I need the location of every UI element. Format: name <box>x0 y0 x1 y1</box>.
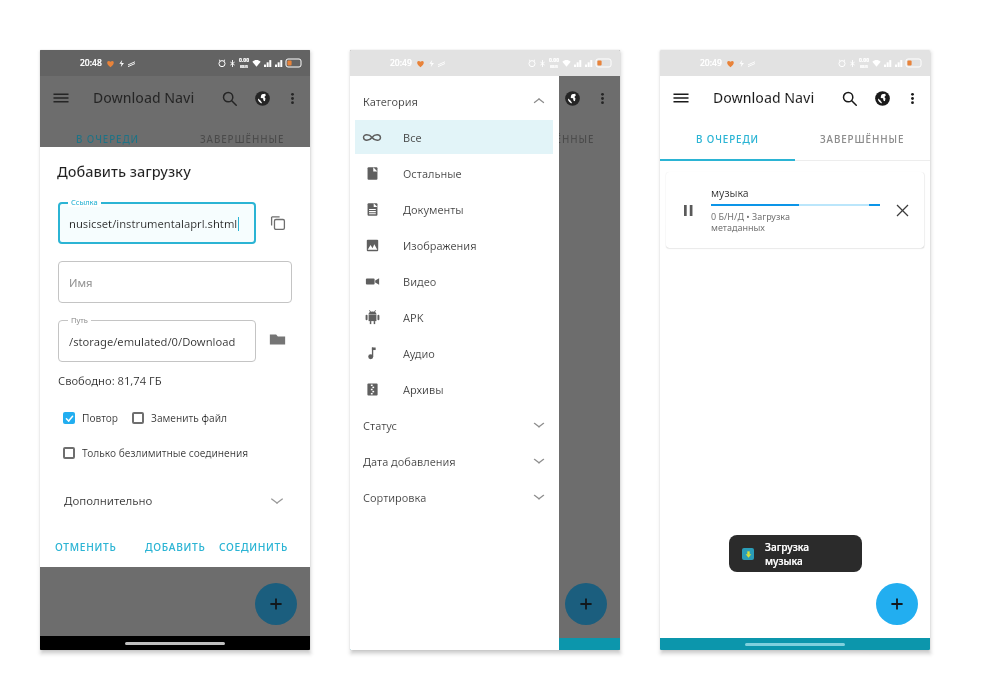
staticText: Download Navi <box>713 88 815 107</box>
staticText: 0.00 <box>859 57 869 64</box>
staticText: В ОЧЕРЕДИ <box>386 133 449 146</box>
staticText: Сортировка <box>363 490 427 505</box>
button[interactable]: Загрузка музыка <box>729 535 862 572</box>
button[interactable]: Choose folder <box>266 328 288 350</box>
staticText: Все <box>403 130 422 145</box>
staticText: Имя <box>69 275 93 290</box>
button[interactable]: Add download <box>876 583 918 625</box>
staticText: ДОБАВИТЬ <box>145 540 206 554</box>
button[interactable]: Add download <box>565 583 607 625</box>
button[interactable]: Copy link <box>267 212 289 234</box>
button[interactable]: Сортировка <box>350 479 559 515</box>
button[interactable]: ОТМЕНИТЬ <box>55 540 117 554</box>
button[interactable]: Остальные <box>355 156 553 190</box>
staticText: Видео <box>403 274 437 289</box>
staticText: ЗАВЕРШЁННЫЕ <box>200 133 285 146</box>
staticText: KB/S <box>860 64 869 69</box>
button[interactable]: Категория <box>350 83 559 119</box>
staticText: Download Navi <box>403 88 505 107</box>
staticText: 0.00 <box>549 57 559 64</box>
staticText: 20:49 <box>390 57 412 69</box>
staticText: В ОЧЕРЕДИ <box>76 133 139 146</box>
button[interactable]: ЗАВЕРШЁННЫЕ <box>485 119 620 159</box>
button[interactable]: Дата добавления <box>350 443 559 479</box>
button[interactable]: Search <box>838 87 860 109</box>
staticText: Путь <box>71 315 88 325</box>
staticText: 20:49 <box>700 57 722 69</box>
staticText: Повтор <box>82 411 119 425</box>
button[interactable]: APK <box>355 300 553 334</box>
button[interactable]: Только безлимитные соединения <box>62 446 249 460</box>
staticText: Категория <box>363 94 418 109</box>
button[interactable]: Аудио <box>355 336 553 370</box>
button[interactable]: Open navigation drawer <box>669 86 693 110</box>
button[interactable]: Видео <box>355 264 553 298</box>
staticText: 0 Б/Н/Д • Загрузка метаданных <box>711 210 790 234</box>
button[interactable]: Open browser <box>561 87 583 109</box>
button[interactable]: More options <box>592 88 612 108</box>
staticText: nusicset/instrumentalaprl.shtml <box>69 216 238 231</box>
button[interactable]: ДОБАВИТЬ <box>145 540 206 554</box>
button[interactable]: Дополнительно <box>40 490 310 512</box>
button[interactable]: More options <box>902 88 922 108</box>
staticText: В ОЧЕРЕДИ <box>696 133 759 146</box>
staticText: 20:48 <box>80 57 102 69</box>
button[interactable]: Search <box>218 87 240 109</box>
staticText: Только безлимитные соединения <box>82 446 249 460</box>
button[interactable]: Open navigation drawer <box>359 86 383 110</box>
button[interactable]: Open browser <box>251 87 273 109</box>
button[interactable]: Заменить файл <box>131 411 227 425</box>
staticText: /storage/emulated/0/Download <box>69 334 236 349</box>
staticText: Download Navi <box>93 88 195 107</box>
button[interactable]: СОЕДИНИТЬ <box>219 540 288 554</box>
button[interactable]: В ОЧЕРЕДИ <box>350 119 485 159</box>
staticText: Заменить файл <box>151 411 227 425</box>
button[interactable]: ЗАВЕРШЁННЫЕ <box>175 119 310 159</box>
button[interactable]: Повтор <box>62 411 119 425</box>
button[interactable]: Pause download <box>666 172 924 248</box>
button[interactable]: Cancel download <box>892 200 912 220</box>
staticText: Свободно: 81,74 ГБ <box>58 373 162 388</box>
button[interactable]: Search <box>528 87 550 109</box>
staticText: ЗАВЕРШЁННЫЕ <box>510 133 595 146</box>
staticText: Дополнительно <box>64 493 153 509</box>
staticText: Остальные <box>403 166 462 181</box>
staticText: KB/S <box>240 64 249 69</box>
staticText: Ссылка <box>71 197 98 207</box>
button[interactable]: В ОЧЕРЕДИ <box>40 119 175 159</box>
button[interactable]: Изображения <box>355 228 553 262</box>
staticText: 0.00 <box>239 57 249 64</box>
staticText: ЗАВЕРШЁННЫЕ <box>820 133 905 146</box>
button[interactable]: Pause download <box>678 200 698 220</box>
staticText: KB/S <box>550 64 559 69</box>
staticText: Аудио <box>403 346 435 361</box>
staticText: Дата добавления <box>363 454 456 469</box>
button[interactable]: Документы <box>355 192 553 226</box>
button[interactable]: Все <box>355 120 553 154</box>
staticText: музыка <box>711 186 749 200</box>
button[interactable]: В ОЧЕРЕДИ <box>660 119 795 159</box>
button[interactable]: Архивы <box>355 372 553 406</box>
staticText: Документы <box>403 202 464 217</box>
button[interactable]: Open browser <box>871 87 893 109</box>
staticText: СОЕДИНИТЬ <box>219 540 288 554</box>
button[interactable]: Add download <box>255 583 297 625</box>
staticText: Добавить загрузку <box>57 161 191 181</box>
staticText: Загрузка музыка <box>765 540 849 568</box>
button[interactable]: Статус <box>350 407 559 443</box>
staticText: Изображения <box>403 238 477 253</box>
button[interactable]: Open navigation drawer <box>49 86 73 110</box>
button[interactable]: More options <box>282 88 302 108</box>
staticText: Статус <box>363 418 397 433</box>
staticText: APK <box>403 310 424 325</box>
button[interactable]: ЗАВЕРШЁННЫЕ <box>795 119 930 159</box>
staticText: Архивы <box>403 382 444 397</box>
staticText: ОТМЕНИТЬ <box>55 540 117 554</box>
